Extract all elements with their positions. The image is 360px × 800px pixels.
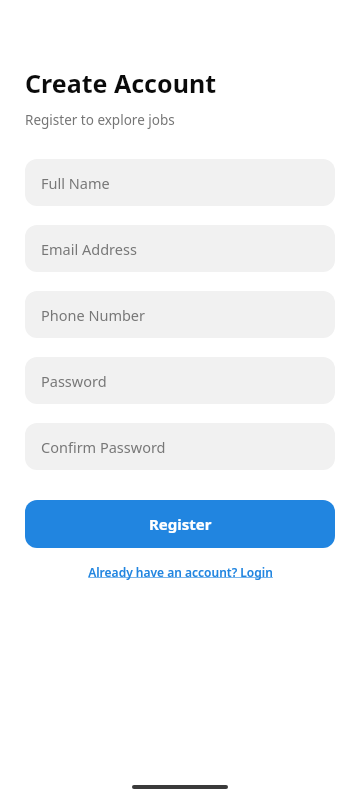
button[interactable]: Full Name [25, 159, 335, 206]
staticText: Register [149, 514, 212, 534]
other: Home indicator [132, 785, 228, 789]
staticText: Full Name [41, 173, 110, 193]
button[interactable]: Email Address [25, 225, 335, 272]
button[interactable]: Register [25, 500, 335, 548]
staticText: Phone Number [41, 305, 146, 325]
staticText: Email Address [41, 239, 137, 259]
staticText: Create Account [25, 66, 216, 100]
staticText: Already have an account? Login [88, 564, 273, 580]
staticText: Register to explore jobs [25, 111, 175, 129]
button[interactable]: Phone Number [25, 291, 335, 338]
button[interactable]: Password [25, 357, 335, 404]
staticText: Password [41, 371, 107, 391]
button[interactable]: Confirm Password [25, 423, 335, 470]
staticText: Confirm Password [41, 437, 166, 457]
button[interactable]: Already have an account? Login [84, 562, 277, 582]
